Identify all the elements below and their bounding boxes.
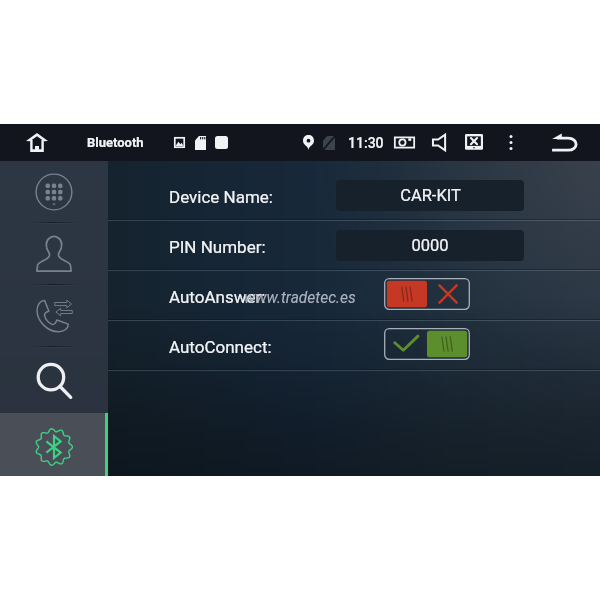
button[interactable]: Dialpad <box>0 161 108 222</box>
staticText: www.tradetec.es <box>244 289 356 307</box>
button[interactable]: Bluetooth settings <box>0 413 108 476</box>
staticText: AutoConnect: <box>169 337 272 357</box>
staticText: AutoAnswer: <box>169 287 266 307</box>
button[interactable]: Home <box>20 124 54 161</box>
button[interactable]: CAR-KIT <box>336 180 524 211</box>
button[interactable]: Back <box>551 133 578 153</box>
staticText: PIN Number: <box>169 237 266 257</box>
button[interactable]: Call history <box>0 286 108 346</box>
button[interactable]: Contacts <box>0 224 108 284</box>
button[interactable]: Disabled <box>384 278 470 310</box>
button[interactable]: More options <box>508 134 514 151</box>
staticText: Bluetooth <box>87 135 144 150</box>
button[interactable]: Search <box>0 348 108 413</box>
button[interactable]: AutoAnswer: <box>108 271 600 319</box>
staticText: Device Name: <box>169 187 273 207</box>
button[interactable]: Camera <box>394 135 415 150</box>
button[interactable]: 0000 <box>336 230 524 261</box>
staticText: 11:30 <box>348 135 384 151</box>
button[interactable]: Device Name: <box>108 171 600 219</box>
staticText: 0000 <box>411 236 449 255</box>
button[interactable]: Screen off <box>465 134 483 151</box>
button[interactable]: PIN Number: <box>108 221 600 269</box>
staticText: CAR-KIT <box>400 186 461 205</box>
button[interactable]: Mute <box>432 134 448 151</box>
button[interactable]: Enabled <box>384 328 470 360</box>
button[interactable]: AutoConnect: <box>108 321 600 369</box>
